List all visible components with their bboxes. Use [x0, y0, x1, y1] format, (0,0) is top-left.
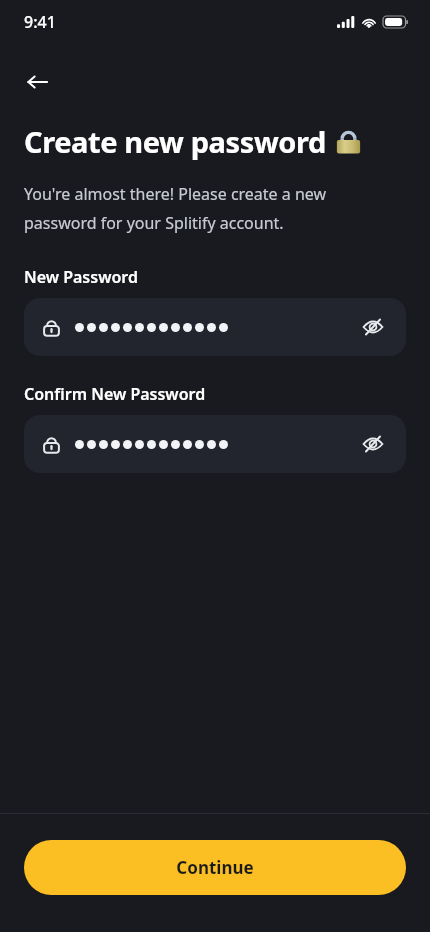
button[interactable]: Back [14, 58, 62, 106]
button[interactable]: Show password [356, 427, 390, 461]
button[interactable]: Show password [356, 310, 390, 344]
staticText: Create new password [24, 122, 326, 161]
staticText: You're almost there! Please create a new… [24, 183, 327, 233]
staticText: New Password [24, 266, 138, 288]
staticText: Confirm New Password [24, 383, 206, 405]
staticText: 9:41 [24, 11, 56, 33]
button[interactable]: Continue [24, 840, 406, 895]
staticText: Continue [176, 856, 254, 879]
button[interactable]: Show password [24, 415, 406, 473]
button[interactable]: Show password [24, 298, 406, 356]
